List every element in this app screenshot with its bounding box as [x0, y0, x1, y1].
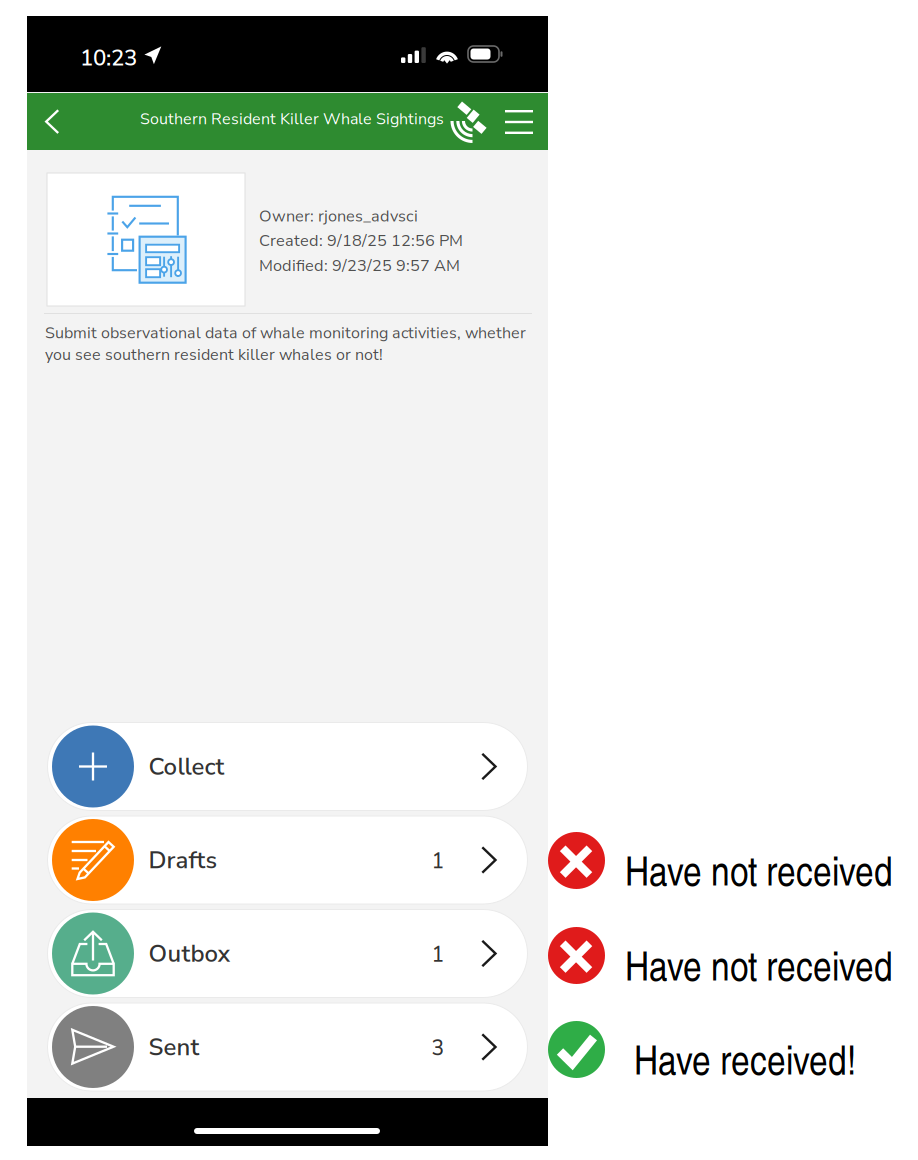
staticText: Drafts [148, 844, 217, 877]
staticText: 3 [431, 1034, 444, 1063]
staticText: Sent [148, 1031, 199, 1064]
button[interactable]: Menu [27, 93, 76, 138]
staticText: Owner: rjones_advsci [259, 205, 418, 227]
staticText: Created: 9/18/25 12:56 PM [259, 229, 463, 252]
staticText: Outbox [148, 937, 230, 970]
staticText: Collect [148, 750, 224, 783]
staticText: Have not received [625, 936, 893, 992]
button[interactable]: Collect [47, 722, 527, 810]
staticText: 1 [431, 847, 444, 876]
staticText: Southern Resident Killer Whale Sightings [140, 108, 444, 130]
staticText: Have received! [634, 1030, 856, 1086]
staticText: 1 [431, 940, 444, 969]
staticText: Have not received [625, 841, 893, 897]
button[interactable]: Sent [47, 1003, 527, 1091]
button[interactable]: Outbox [47, 909, 527, 997]
staticText: 10:23 [80, 43, 137, 73]
button[interactable]: Back [27, 93, 77, 138]
button[interactable]: Drafts [47, 816, 527, 904]
staticText: Modified: 9/23/25 9:57 AM [259, 254, 460, 277]
staticText: Submit observational data of whale monit… [45, 322, 526, 366]
button[interactable]: Location status [27, 93, 75, 141]
